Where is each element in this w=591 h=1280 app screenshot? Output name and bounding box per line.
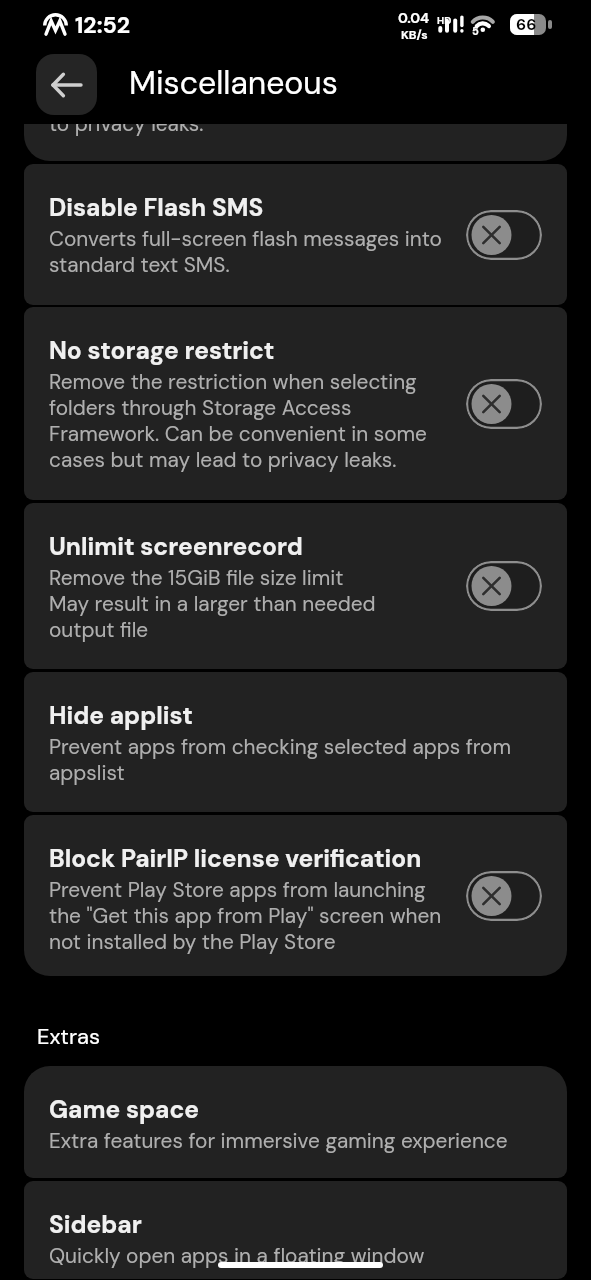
staticText: Prevent Play Store apps from launching t… — [49, 876, 442, 956]
staticText: 66 — [516, 14, 537, 35]
staticText: Miscellaneous — [129, 62, 338, 104]
staticText: HD — [437, 14, 452, 27]
button[interactable]: Toggle off — [466, 210, 542, 260]
staticText: Prevent apps from checking selected apps… — [49, 733, 511, 787]
button[interactable]: Hide applist — [24, 672, 567, 812]
button[interactable]: Sidebar — [24, 1181, 567, 1279]
button[interactable]: Game space — [24, 1066, 567, 1178]
button[interactable]: No storage restrict — [24, 307, 567, 500]
button[interactable]: Unlimit screenrecord — [24, 503, 567, 669]
staticText: Unlimit screenrecord — [49, 531, 303, 563]
staticText: Sidebar — [49, 1209, 142, 1241]
staticText: 5 — [472, 24, 479, 38]
staticText: to privacy leaks. — [49, 124, 204, 137]
staticText: Remove the restriction when selecting fo… — [49, 368, 427, 474]
staticText: 0.04 — [398, 9, 430, 27]
staticText: No storage restrict — [49, 335, 275, 367]
button[interactable]: Toggle off — [466, 379, 542, 429]
button[interactable]: Disable Flash SMS — [24, 164, 567, 305]
staticText: Extra features for immersive gaming expe… — [49, 1127, 508, 1154]
button[interactable]: Back — [36, 54, 97, 115]
staticText: Quickly open apps in a floating window — [49, 1242, 425, 1269]
staticText: Block PairIP license verification — [49, 843, 422, 875]
staticText: KB/s — [401, 27, 428, 43]
button[interactable]: Toggle off — [466, 871, 542, 921]
button[interactable]: Block PairIP license verification — [24, 815, 567, 976]
staticText: Extras — [37, 1022, 101, 1051]
staticText: Game space — [49, 1094, 200, 1126]
button[interactable]: Toggle off — [466, 561, 542, 611]
staticText: 12:52 — [75, 10, 130, 40]
staticText: Remove the 15GiB file size limit May res… — [49, 564, 376, 644]
staticText: Converts full-screen flash messages into… — [49, 225, 442, 279]
staticText: Hide applist — [49, 700, 193, 732]
staticText: Disable Flash SMS — [49, 192, 264, 224]
